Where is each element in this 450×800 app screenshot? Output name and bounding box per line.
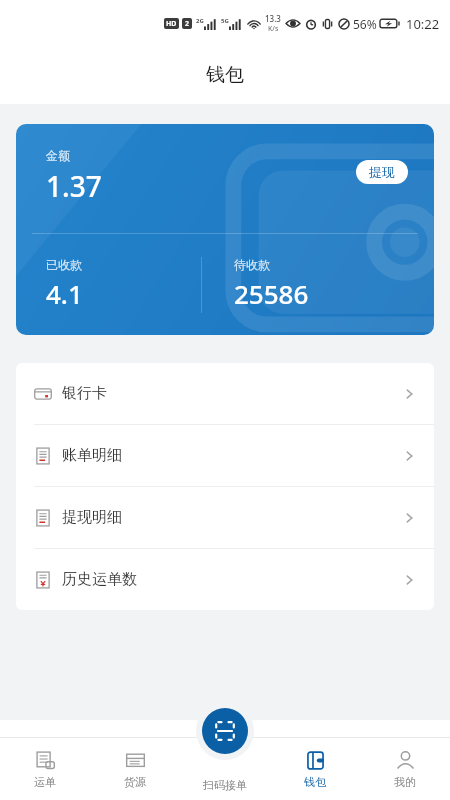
staticText: 金额 — [46, 148, 70, 163]
staticText: 提现 — [369, 164, 395, 180]
staticText: 56% — [353, 16, 377, 32]
button[interactable]: 扫码接单 — [202, 708, 248, 754]
button[interactable]: 扫码接单 — [203, 778, 247, 792]
button[interactable]: 账单明细 — [16, 425, 434, 486]
staticText: 银行卡 — [62, 384, 107, 403]
staticText: 25586 — [234, 276, 309, 311]
staticText: 账单明细 — [62, 446, 122, 465]
staticText: 2 — [185, 19, 190, 29]
button[interactable]: 提现 — [356, 160, 408, 184]
staticText: 13.3 — [265, 13, 281, 24]
staticText: 运单 — [34, 775, 56, 789]
staticText: 待收款 — [234, 257, 270, 272]
staticText: 2G — [196, 17, 204, 25]
staticText: 钱包 — [304, 775, 326, 789]
button[interactable]: 我的 — [360, 738, 450, 800]
staticText: 历史运单数 — [62, 570, 137, 589]
button[interactable]: 提现明细 — [16, 487, 434, 548]
staticText: 5G — [221, 17, 229, 25]
staticText: 提现明细 — [62, 508, 122, 527]
staticText: 已收款 — [46, 257, 82, 272]
button[interactable]: 钱包 — [270, 738, 360, 800]
button[interactable]: 银行卡 — [16, 363, 434, 424]
button[interactable]: 货源 — [90, 738, 180, 800]
staticText: 10:22 — [406, 15, 440, 33]
staticText: 货源 — [124, 775, 146, 789]
staticText: HD — [166, 19, 177, 29]
button[interactable]: 历史运单数 — [16, 549, 434, 610]
staticText: 1.37 — [46, 167, 102, 205]
button[interactable]: 运单 — [0, 738, 90, 800]
staticText: K/s — [268, 24, 279, 34]
staticText: 我的 — [394, 775, 416, 789]
staticText: 4.1 — [46, 276, 83, 311]
staticText: 扫码接单 — [203, 778, 247, 792]
staticText: 钱包 — [206, 63, 244, 87]
